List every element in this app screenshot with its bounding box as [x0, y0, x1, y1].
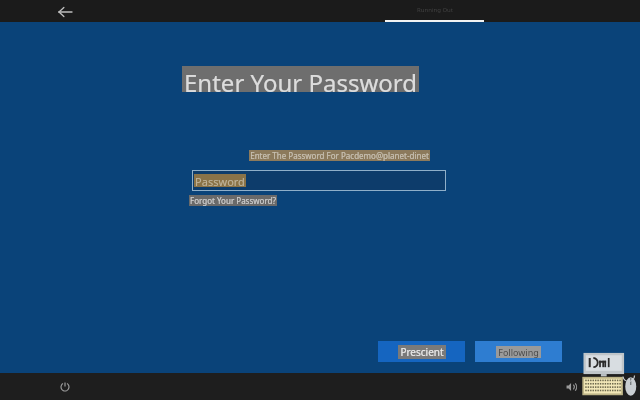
staticText: Password — [195, 174, 245, 187]
staticText: Running Out — [417, 6, 453, 14]
button[interactable]: Running Out — [385, 0, 484, 22]
button[interactable]: Following — [475, 341, 562, 362]
staticText: Following — [498, 346, 539, 358]
staticText: Forgot Your Password? — [190, 195, 276, 206]
button[interactable]: Prescient — [378, 341, 465, 362]
button[interactable]: Password — [192, 170, 446, 191]
staticText: Enter Your Password — [184, 66, 417, 92]
staticText: Enter The Password For Pacdemo@planet-di… — [250, 150, 429, 161]
button[interactable]: Forgot Your Password? — [189, 195, 277, 206]
staticText: Prescient — [400, 345, 444, 359]
button[interactable]: Volume — [563, 379, 579, 395]
button[interactable]: Back — [55, 3, 75, 20]
button[interactable]: Power — [57, 379, 73, 395]
